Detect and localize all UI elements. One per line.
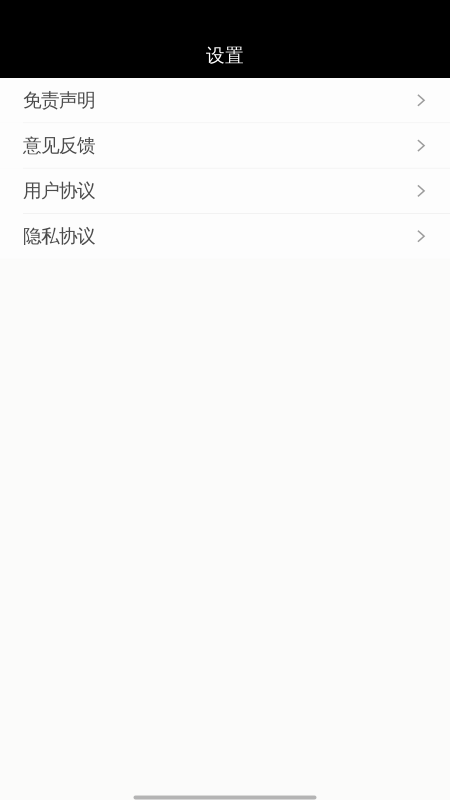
- button[interactable]: 意见反馈: [0, 123, 450, 168]
- staticText: 用户协议: [23, 179, 96, 202]
- button[interactable]: 隐私协议: [0, 214, 450, 258]
- staticText: 意见反馈: [23, 134, 96, 157]
- button[interactable]: 用户协议: [0, 169, 450, 213]
- button[interactable]: 免责声明: [0, 78, 450, 123]
- staticText: 设置: [206, 44, 244, 67]
- staticText: 免责声明: [23, 89, 96, 112]
- staticText: 隐私协议: [23, 225, 96, 248]
